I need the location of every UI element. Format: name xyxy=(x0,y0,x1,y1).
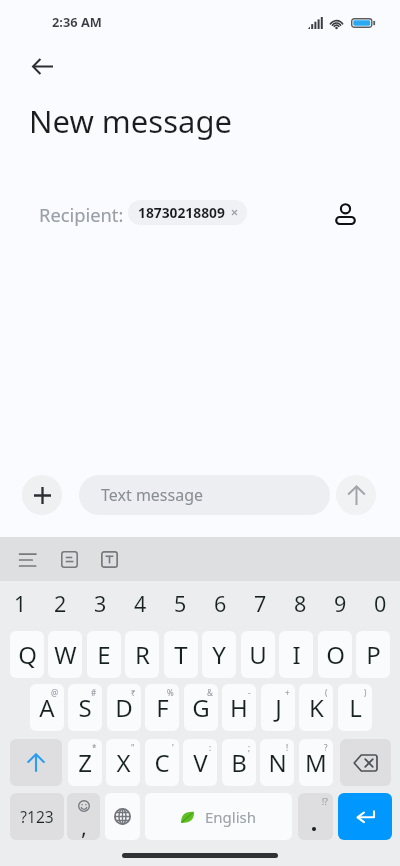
button[interactable]: U xyxy=(241,631,275,678)
button[interactable]: 7 xyxy=(240,583,280,623)
button[interactable]: Back xyxy=(23,47,62,86)
staticText: U xyxy=(249,638,267,671)
staticText: ! xyxy=(286,742,289,753)
staticText: J xyxy=(275,691,282,724)
button[interactable]: Change language xyxy=(105,793,140,840)
staticText: , xyxy=(81,811,87,840)
button[interactable]: A xyxy=(30,684,64,731)
staticText: 6 xyxy=(214,589,227,618)
staticText: 3 xyxy=(94,589,107,618)
button[interactable]: R xyxy=(125,631,159,678)
staticText: L xyxy=(349,691,362,724)
button[interactable]: Choose contact xyxy=(325,194,365,234)
button[interactable]: 6 xyxy=(200,583,240,623)
staticText: % xyxy=(167,687,174,698)
button[interactable]: 3 xyxy=(80,583,120,623)
staticText: X xyxy=(116,746,131,779)
staticText: " xyxy=(131,742,135,753)
button[interactable]: Z xyxy=(68,739,102,786)
staticText: - xyxy=(248,687,251,698)
button[interactable]: Keyboard menu xyxy=(12,545,42,573)
staticText: 7 xyxy=(254,589,267,618)
staticText: * xyxy=(92,742,97,753)
staticText: # xyxy=(91,687,97,698)
button[interactable]: M xyxy=(299,739,333,786)
button[interactable]: Q xyxy=(10,631,44,678)
staticText: 9 xyxy=(334,589,347,618)
staticText: K xyxy=(309,691,324,724)
button[interactable]: Clipboard xyxy=(54,543,84,575)
button[interactable]: English xyxy=(145,793,292,840)
staticText: D xyxy=(115,691,133,724)
button[interactable]: ?123 xyxy=(10,793,64,840)
button[interactable]: 18730218809 xyxy=(128,200,247,225)
button[interactable]: V xyxy=(183,739,217,786)
staticText: ( xyxy=(325,687,328,698)
staticText: 0 xyxy=(374,589,387,618)
button[interactable]: H xyxy=(222,684,256,731)
staticText: : xyxy=(209,742,212,753)
button[interactable]: P xyxy=(356,631,390,678)
staticText: ' xyxy=(172,742,174,753)
button[interactable]: 8 xyxy=(280,583,320,623)
staticText: 5 xyxy=(174,589,187,618)
staticText: ₹ xyxy=(131,687,136,698)
staticText: A xyxy=(39,691,55,724)
button[interactable]: Text editing xyxy=(94,543,124,575)
staticText: ) xyxy=(364,687,367,698)
button[interactable]: W xyxy=(48,631,82,678)
other: Shift xyxy=(27,753,45,772)
button[interactable]: Text message xyxy=(79,475,330,515)
button[interactable]: Enter xyxy=(338,793,392,840)
staticText: Y xyxy=(212,638,226,671)
staticText: I xyxy=(292,638,301,671)
button[interactable]: F xyxy=(145,684,179,731)
button[interactable]: D xyxy=(107,684,141,731)
staticText: Recipient: xyxy=(39,202,124,227)
button[interactable]: J xyxy=(261,684,295,731)
staticText: T xyxy=(174,638,188,671)
button[interactable]: 9 xyxy=(320,583,360,623)
button[interactable]: S xyxy=(68,684,102,731)
button[interactable]: X xyxy=(106,739,140,786)
button[interactable]: Shift xyxy=(10,739,62,786)
button[interactable]: Y xyxy=(202,631,236,678)
button[interactable]: L xyxy=(338,684,372,731)
staticText: 8 xyxy=(294,589,307,618)
staticText: 2:36 AM xyxy=(52,13,102,30)
button[interactable]: I xyxy=(279,631,313,678)
button[interactable]: Add attachment xyxy=(22,475,62,515)
staticText: R xyxy=(135,638,150,671)
button[interactable]: 0 xyxy=(360,583,400,623)
button[interactable]: !? xyxy=(298,793,333,840)
staticText: ; xyxy=(248,742,251,753)
button[interactable]: B xyxy=(222,739,256,786)
staticText: Text message xyxy=(101,484,204,506)
other: Enter xyxy=(356,810,375,824)
button[interactable]: 4 xyxy=(120,583,160,623)
button[interactable]: 2 xyxy=(40,583,80,623)
button[interactable]: 1 xyxy=(0,583,40,623)
staticText: @ xyxy=(51,687,59,698)
button[interactable]: 5 xyxy=(160,583,200,623)
button[interactable]: K xyxy=(299,684,333,731)
button[interactable]: E xyxy=(87,631,121,678)
other: Backspace xyxy=(353,754,378,772)
staticText: H xyxy=(230,691,248,724)
button[interactable]: , xyxy=(67,793,100,840)
staticText: ? xyxy=(324,742,328,753)
staticText: Z xyxy=(78,746,92,779)
staticText: M xyxy=(305,746,327,779)
button[interactable]: T xyxy=(164,631,198,678)
staticText: E xyxy=(97,638,111,671)
staticText: S xyxy=(78,691,92,724)
staticText: W xyxy=(54,638,77,671)
staticText: 18730218809 xyxy=(138,203,225,222)
staticText: !? xyxy=(322,796,328,807)
button[interactable]: G xyxy=(184,684,218,731)
button[interactable]: Send xyxy=(336,475,376,515)
button[interactable]: Backspace xyxy=(340,739,391,786)
button[interactable]: C xyxy=(145,739,179,786)
button[interactable]: O xyxy=(318,631,352,678)
button[interactable]: N xyxy=(260,739,294,786)
